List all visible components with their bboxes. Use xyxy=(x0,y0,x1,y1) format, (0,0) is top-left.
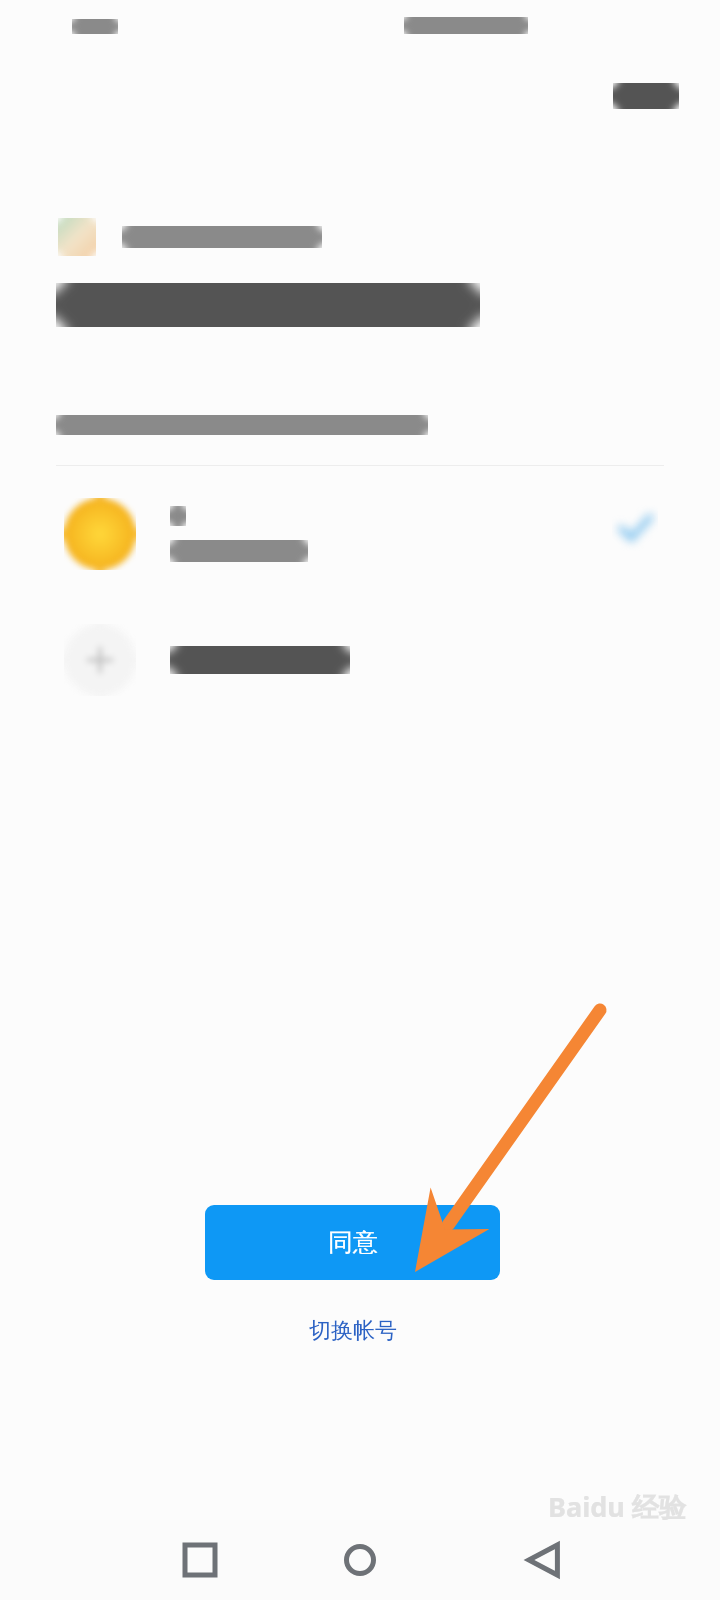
button[interactable]: 切换帐号 xyxy=(260,1300,445,1362)
button[interactable]: 同意 xyxy=(205,1205,500,1280)
staticText: 同意 xyxy=(328,1227,378,1258)
button[interactable]: 取消 xyxy=(600,72,692,120)
button[interactable]: Back xyxy=(503,1520,583,1600)
button[interactable]: Home xyxy=(320,1520,400,1600)
button[interactable] xyxy=(0,478,720,590)
staticText: 切换帐号 xyxy=(309,1317,397,1345)
button[interactable]: Recents xyxy=(160,1520,240,1600)
staticText: jingyan.baidu.com xyxy=(548,1525,670,1544)
staticText: Baidu 经验 xyxy=(548,1488,686,1525)
button[interactable] xyxy=(0,605,720,715)
